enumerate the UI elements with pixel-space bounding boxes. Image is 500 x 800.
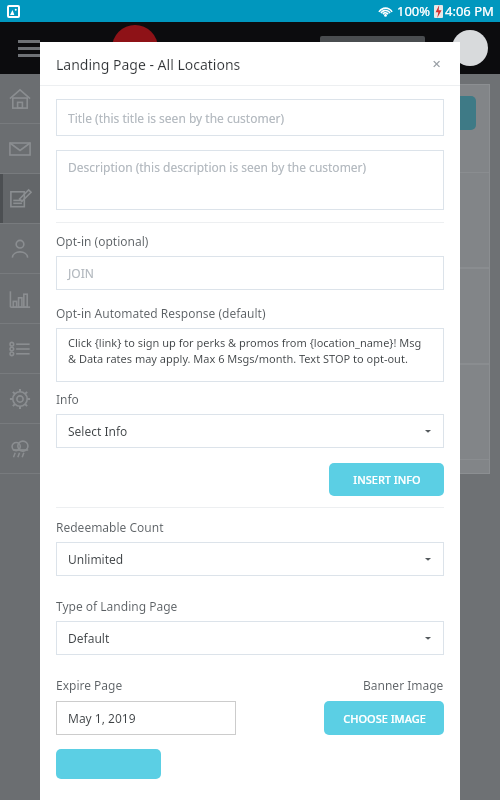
staticText: JOIN <box>68 265 94 281</box>
button[interactable]: Contacts <box>0 224 40 274</box>
button[interactable]: Lists <box>0 324 40 374</box>
button[interactable]: Settings <box>0 374 40 424</box>
staticText: Opt-in (optional) <box>56 233 149 249</box>
staticText: Unlimited <box>68 551 124 567</box>
button[interactable]: Save <box>56 749 161 779</box>
button[interactable]: Reports <box>0 274 40 324</box>
staticText: 4:06 PM <box>445 2 494 20</box>
staticText: Default <box>68 630 110 646</box>
staticText: Banner Image <box>363 677 444 693</box>
staticText: Expire Page <box>56 677 123 693</box>
button[interactable]: Title (this title is seen by the custome… <box>56 99 444 136</box>
staticText: Info <box>56 391 79 407</box>
staticText: Opt-in Automated Response (default) <box>56 305 266 321</box>
button[interactable]: Description (this description is seen by… <box>56 150 444 210</box>
button[interactable]: JOIN <box>56 256 444 290</box>
staticText: Landing Page - All Locations <box>56 55 241 74</box>
staticText: Redeemable Count <box>56 519 164 535</box>
staticText: Description (this description is seen by… <box>68 159 367 175</box>
staticText: 100% <box>397 2 431 20</box>
button[interactable]: CHOOSE IMAGE <box>324 701 444 735</box>
button[interactable]: Select Info <box>56 414 444 448</box>
button[interactable]: May 1, 2019 <box>56 701 236 735</box>
button[interactable]: Unlimited <box>56 542 444 576</box>
staticText: CHOOSE IMAGE <box>343 711 426 726</box>
staticText: Title (this title is seen by the custome… <box>68 110 285 126</box>
button[interactable]: Home <box>0 74 40 124</box>
button[interactable]: Close <box>424 51 450 77</box>
button[interactable]: INSERT INFO <box>329 463 444 496</box>
staticText: Click {link} to sign up for perks & prom… <box>68 335 432 367</box>
button[interactable]: Compose <box>0 174 40 224</box>
staticText: INSERT INFO <box>353 472 421 487</box>
button[interactable]: Click {link} to sign up for perks & prom… <box>56 328 444 382</box>
staticText: May 1, 2019 <box>68 710 136 726</box>
button[interactable]: Weather <box>0 424 40 474</box>
staticText: Type of Landing Page <box>56 598 178 614</box>
staticText: Select Info <box>68 423 128 439</box>
staticText: ✕ <box>432 58 442 71</box>
button[interactable]: Mail <box>0 124 40 174</box>
button[interactable]: Default <box>56 621 444 655</box>
